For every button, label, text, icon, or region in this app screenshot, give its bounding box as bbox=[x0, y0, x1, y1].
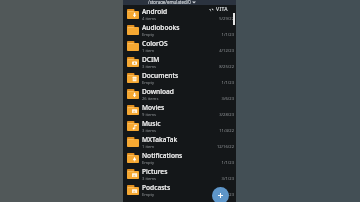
staticText: 1/1/23 bbox=[221, 192, 234, 198]
button[interactable]: ColorOS bbox=[123, 38, 236, 54]
button[interactable]: Add bbox=[212, 187, 229, 202]
staticText: 1/1/23 bbox=[221, 80, 234, 86]
staticText: 3 items bbox=[142, 64, 157, 70]
staticText: VITA bbox=[216, 6, 228, 13]
staticText: Audiobooks bbox=[142, 23, 180, 32]
staticText: 12/16/22 bbox=[216, 144, 234, 150]
button[interactable]: Download bbox=[123, 86, 236, 102]
staticText: 9 items bbox=[142, 112, 157, 118]
staticText: 1 item bbox=[142, 144, 155, 150]
button[interactable]: /storage/emulated/0 bbox=[123, 0, 236, 5]
button[interactable]: Movies bbox=[123, 102, 236, 118]
button[interactable]: Podcasts bbox=[123, 182, 236, 198]
button[interactable]: Music bbox=[123, 118, 236, 134]
staticText: Podcasts bbox=[142, 183, 171, 192]
staticText: 3 items bbox=[142, 176, 157, 182]
staticText: Empty bbox=[142, 192, 155, 198]
button[interactable]: Pictures bbox=[123, 166, 236, 182]
staticText: 4/12/23 bbox=[219, 48, 234, 54]
button[interactable]: Notifications bbox=[123, 150, 236, 166]
staticText: Notifications bbox=[142, 151, 183, 160]
staticText: 1 item bbox=[142, 48, 155, 54]
staticText: DCIM bbox=[142, 55, 160, 64]
staticText: 26 items bbox=[142, 96, 159, 102]
staticText: Empty bbox=[142, 80, 155, 86]
staticText: MXTakaTak bbox=[142, 135, 178, 144]
staticText: 3/6/23 bbox=[221, 96, 234, 102]
button[interactable]: Android bbox=[123, 6, 236, 22]
staticText: 1/1/23 bbox=[221, 160, 234, 166]
staticText: 1/1/23 bbox=[221, 32, 234, 38]
staticText: Empty bbox=[142, 32, 155, 38]
staticText: 4 items bbox=[142, 16, 157, 22]
button[interactable]: DCIM bbox=[123, 54, 236, 70]
staticText: Download bbox=[142, 87, 174, 96]
staticText: Pictures bbox=[142, 167, 168, 176]
staticText: Music bbox=[142, 119, 161, 128]
staticText: 3/1/23 bbox=[221, 176, 234, 182]
button[interactable]: Audiobooks bbox=[123, 22, 236, 38]
staticText: Android bbox=[142, 7, 168, 16]
staticText: Movies bbox=[142, 103, 165, 112]
staticText: /storage/emulated/0 bbox=[148, 0, 191, 4]
staticText: ColorOS bbox=[142, 39, 168, 48]
button[interactable]: Documents bbox=[123, 70, 236, 86]
staticText: Documents bbox=[142, 71, 179, 80]
button[interactable]: MXTakaTak bbox=[123, 134, 236, 150]
staticText: 3 items bbox=[142, 128, 157, 134]
staticText: 5/29/22 bbox=[219, 16, 234, 22]
staticText: 11/4/22 bbox=[219, 128, 234, 134]
staticText: 3/28/23 bbox=[219, 112, 234, 118]
staticText: Empty bbox=[142, 160, 155, 166]
staticText: 8/25/22 bbox=[219, 64, 234, 70]
